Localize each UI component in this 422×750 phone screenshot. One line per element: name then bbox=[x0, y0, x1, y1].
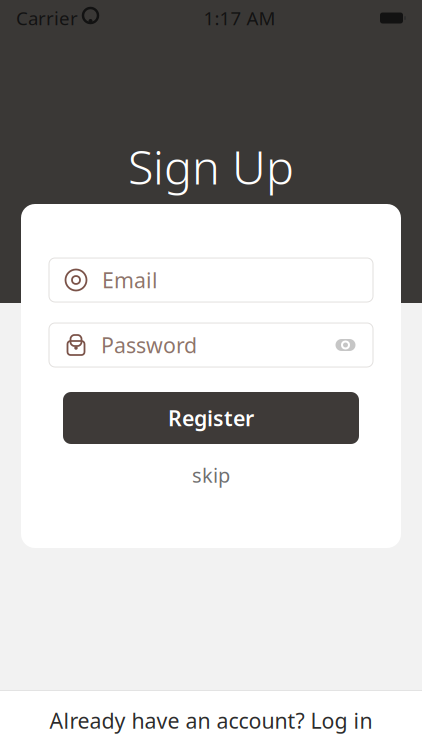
staticText: Carrier bbox=[16, 6, 78, 30]
staticText: Already have an account? Log in bbox=[49, 706, 372, 735]
button[interactable]: skip bbox=[151, 458, 271, 492]
button[interactable]: Register bbox=[63, 392, 359, 444]
button[interactable]: Email bbox=[49, 258, 373, 302]
button[interactable]: Password bbox=[49, 323, 373, 367]
staticText: Register bbox=[168, 404, 254, 432]
staticText: 1:17 AM bbox=[203, 6, 275, 30]
staticText: skip bbox=[192, 462, 230, 488]
staticText: Password bbox=[101, 331, 197, 359]
staticText: Sign Up bbox=[128, 135, 294, 197]
button[interactable]: Already have an account? Log in bbox=[0, 691, 422, 750]
staticText: Email bbox=[102, 266, 158, 294]
